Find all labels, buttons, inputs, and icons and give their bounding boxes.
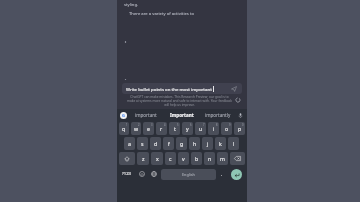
staticText: 7 (203, 123, 205, 127)
button[interactable]: j (202, 137, 213, 150)
staticText: 9 (229, 123, 231, 127)
button[interactable]: g (176, 137, 187, 150)
staticText: e (147, 125, 150, 132)
staticText: l (233, 140, 235, 147)
button[interactable]: Emoji (137, 167, 147, 181)
staticText: important (135, 112, 157, 118)
button[interactable]: i (208, 122, 219, 135)
staticText: q (122, 125, 126, 132)
staticText: Important (170, 112, 194, 118)
button[interactable]: k (215, 137, 226, 150)
button[interactable]: Voice assistant (120, 112, 127, 119)
staticText: y (186, 125, 189, 132)
staticText: importantly (205, 112, 231, 118)
button[interactable]: h (189, 137, 200, 150)
button[interactable]: f (163, 137, 174, 150)
staticText: 5 (177, 123, 179, 127)
staticText: G (122, 113, 125, 118)
staticText: Write bullet points on the most importan… (126, 86, 212, 92)
staticText: a (128, 140, 131, 147)
button[interactable]: a (124, 137, 135, 150)
staticText: j (207, 140, 209, 147)
staticText: n (208, 155, 212, 162)
button[interactable]: v (178, 152, 189, 165)
staticText: c (169, 155, 172, 162)
button[interactable]: u (195, 122, 206, 135)
button[interactable]: q (119, 122, 129, 135)
button[interactable]: Period (218, 167, 225, 181)
button[interactable]: r (156, 122, 167, 135)
button[interactable]: p (234, 122, 245, 135)
staticText: x (156, 155, 159, 162)
staticText: o (225, 125, 229, 132)
button[interactable]: Send (230, 85, 238, 93)
button[interactable]: Regenerate (233, 95, 242, 104)
staticText: m (220, 155, 225, 162)
staticText: u (199, 125, 203, 132)
staticText: 1 (126, 123, 128, 127)
button[interactable]: o (221, 122, 232, 135)
button[interactable]: Important (164, 109, 200, 121)
staticText: b (195, 155, 199, 162)
staticText: 4 (164, 123, 166, 127)
button[interactable]: c (165, 152, 176, 165)
button[interactable]: l (228, 137, 239, 150)
staticText: 0 (242, 123, 244, 127)
staticText: 8 (216, 123, 218, 127)
button[interactable]: Enter (231, 169, 242, 180)
button[interactable]: d (150, 137, 161, 150)
button[interactable]: s (137, 137, 148, 150)
button[interactable]: t (169, 122, 180, 135)
staticText: p (238, 125, 242, 132)
button[interactable]: Language (149, 167, 159, 181)
staticText: i (213, 125, 215, 132)
staticText: . (221, 171, 223, 177)
staticText: English (182, 172, 195, 177)
staticText: r (160, 125, 163, 132)
staticText: g (180, 140, 184, 147)
staticText: f (168, 140, 170, 147)
staticText: 6 (190, 123, 192, 127)
button[interactable]: y (182, 122, 193, 135)
staticText: 3 (151, 123, 153, 127)
button[interactable]: Symbols (119, 167, 135, 181)
button[interactable]: Voice input (236, 111, 244, 119)
staticText: v (182, 155, 185, 162)
staticText: There are a variety of activities to (129, 11, 194, 17)
staticText: h (193, 140, 197, 147)
button[interactable]: Backspace (230, 152, 245, 165)
staticText: z (142, 155, 145, 162)
button[interactable]: important (127, 109, 164, 121)
button[interactable]: z (137, 152, 149, 165)
button[interactable]: b (191, 152, 202, 165)
button[interactable]: m (217, 152, 228, 165)
staticText: d (154, 140, 158, 147)
staticText: ChatGPT can make mistakes. This Research… (126, 95, 233, 107)
button[interactable]: Shift (119, 152, 135, 165)
staticText: w (134, 125, 139, 132)
button[interactable]: English (161, 169, 216, 180)
button[interactable]: importantly (200, 109, 236, 121)
staticText: styling. (124, 2, 139, 8)
button[interactable]: Write bullet points on the most importan… (122, 83, 242, 94)
button[interactable]: x (151, 152, 163, 165)
button[interactable]: w (131, 122, 141, 135)
staticText: 2 (138, 123, 140, 127)
button[interactable]: n (204, 152, 215, 165)
button[interactable]: e (143, 122, 154, 135)
staticText: s (141, 140, 144, 147)
staticText: ?123 (122, 171, 132, 177)
staticText: t (174, 125, 176, 132)
staticText: k (219, 140, 222, 147)
